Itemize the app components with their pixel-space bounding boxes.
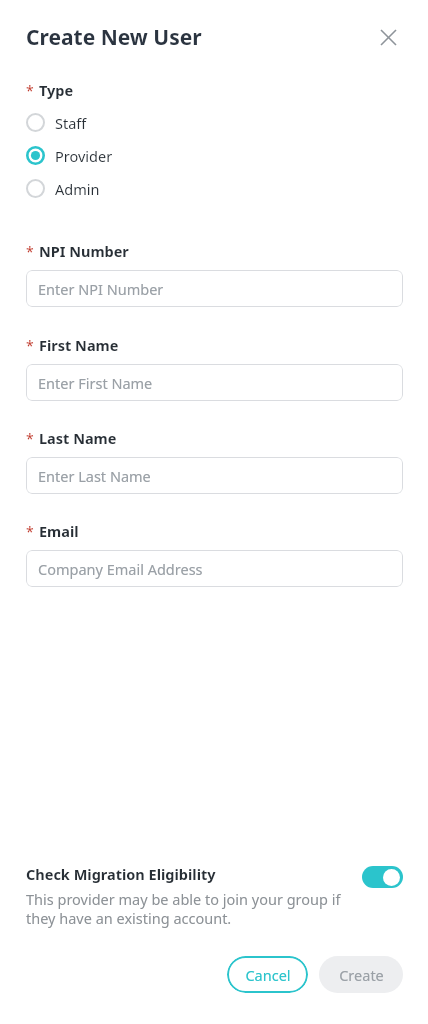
staticText: First Name [39,335,119,355]
staticText: Enter Last Name [38,466,151,486]
staticText: Check Migration Eligibility [26,864,216,884]
button[interactable]: Provider [26,139,403,172]
button[interactable]: Company Email Address [26,550,403,587]
staticText: * [26,522,34,541]
staticText: * [26,336,34,355]
button[interactable]: Enter NPI Number [26,270,403,307]
staticText: * [26,429,34,448]
staticText: Admin [55,179,100,199]
staticText: Email [39,521,79,541]
button[interactable]: Enter Last Name [26,457,403,494]
staticText: * [26,81,34,100]
button[interactable]: Admin [26,172,403,205]
staticText: NPI Number [39,241,129,261]
staticText: Last Name [39,428,117,448]
staticText: Enter First Name [38,373,153,393]
button[interactable]: Staff [26,106,403,139]
staticText: Company Email Address [38,559,203,579]
staticText: Cancel [245,965,291,985]
button[interactable]: Close [373,22,403,52]
button[interactable]: Create [319,956,403,993]
button[interactable]: Cancel [227,956,308,993]
staticText: This provider may be able to join your g… [26,889,352,928]
staticText: Create [339,965,384,985]
button[interactable]: Enter First Name [26,364,403,401]
button[interactable]: Check Migration Eligibility toggle [362,866,403,888]
staticText: * [26,242,34,261]
staticText: Staff [55,113,87,133]
staticText: Provider [55,146,113,166]
staticText: Create New User [26,23,373,52]
staticText: Type [39,80,74,100]
staticText: Enter NPI Number [38,279,164,299]
